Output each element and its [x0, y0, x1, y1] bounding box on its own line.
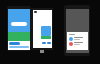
button[interactable]: [9, 42, 20, 45]
button[interactable]: [11, 22, 27, 26]
button[interactable]: [47, 42, 51, 44]
button[interactable]: [42, 42, 46, 44]
